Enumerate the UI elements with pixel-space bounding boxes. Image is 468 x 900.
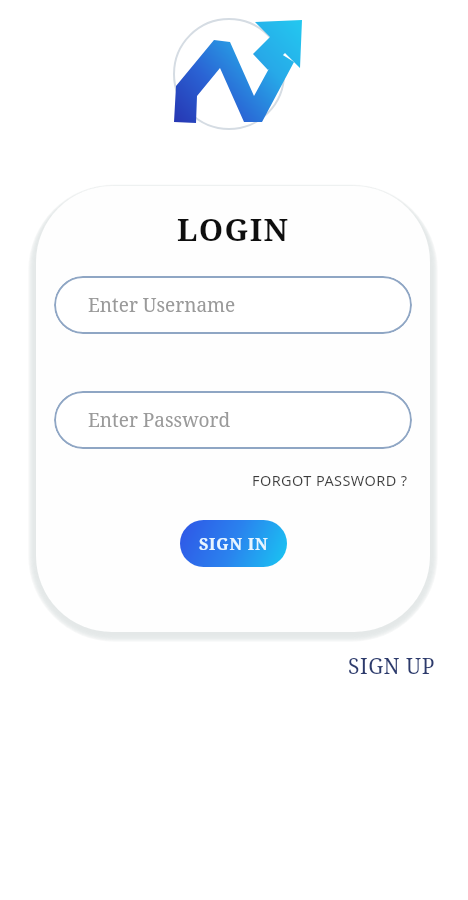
other: App logo [168,12,308,134]
button[interactable]: Enter Password [54,391,412,449]
staticText: SIGN IN [199,533,269,555]
button[interactable]: FORGOT PASSWORD ? [250,467,410,493]
staticText: FORGOT PASSWORD ? [252,470,408,490]
staticText: LOGIN [177,208,290,250]
button[interactable]: SIGN UP [344,649,439,684]
button[interactable]: SIGN IN [180,520,287,567]
staticText: Enter Password [88,407,231,433]
staticText: Enter Username [88,292,236,318]
button[interactable]: Enter Username [54,276,412,334]
staticText: SIGN UP [348,652,435,681]
